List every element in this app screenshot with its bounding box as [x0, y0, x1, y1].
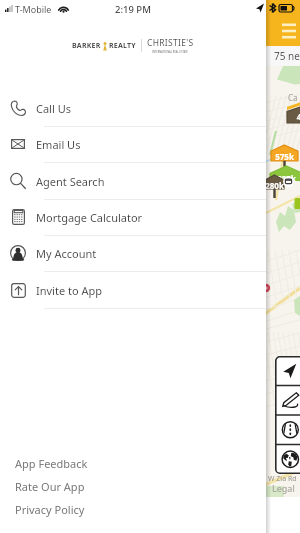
staticText: Ca	[288, 92, 298, 103]
staticText: INTERNATIONAL REAL ESTATE	[152, 50, 189, 54]
staticText: 4	[283, 111, 300, 122]
staticText: My Account	[36, 246, 97, 261]
button[interactable]: Invite to App	[0, 272, 266, 308]
staticText: REALTY	[109, 41, 136, 51]
staticText: 2:19 PM	[115, 3, 151, 16]
staticText: Rate Our App	[15, 479, 85, 494]
staticText: 390k	[270, 173, 300, 184]
staticText: Invite to App	[36, 283, 103, 298]
button[interactable]: Agent Search	[0, 163, 266, 199]
staticText: Agent Search	[36, 174, 105, 189]
staticText: Legal	[272, 482, 295, 494]
staticText: Mortgage Calculator	[36, 210, 143, 225]
button[interactable]: Privacy Policy	[0, 498, 266, 521]
staticText: W Zia Rd	[268, 474, 297, 484]
staticText: T-Mobile	[15, 3, 52, 15]
staticText: Privacy Policy	[15, 502, 85, 517]
button[interactable]: Email Us	[0, 126, 266, 162]
staticText: Call Us	[36, 101, 71, 116]
staticText: Email Us	[36, 137, 81, 152]
staticText: App Feedback	[15, 456, 88, 471]
staticText: CHRISTIE'S	[147, 37, 194, 49]
staticText: 575k	[271, 151, 298, 162]
staticText: 280k	[265, 180, 284, 191]
button[interactable]: Call Us	[0, 90, 266, 126]
button[interactable]: Mortgage Calculator	[0, 199, 266, 235]
staticText: 75 new listings	[274, 49, 300, 63]
button[interactable]: Menu	[281, 22, 297, 38]
button[interactable]: App Feedback	[0, 452, 266, 475]
button[interactable]: Rate Our App	[0, 475, 266, 498]
staticText: BARKER	[72, 41, 101, 51]
button[interactable]: My Account	[0, 235, 266, 271]
